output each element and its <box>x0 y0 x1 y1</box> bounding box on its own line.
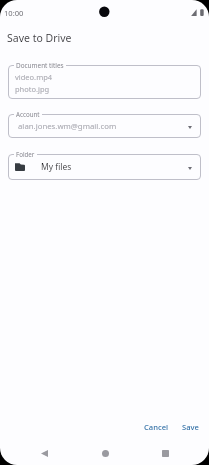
button[interactable]: video.mp4 <box>8 65 201 99</box>
staticText: Cancel <box>144 422 169 432</box>
button[interactable]: Save <box>178 419 203 435</box>
button[interactable]: My files <box>8 154 201 180</box>
button[interactable]: Back <box>32 441 56 465</box>
staticText: Save to Drive <box>7 31 72 45</box>
staticText: video.mp4 <box>15 72 53 82</box>
button[interactable]: Home <box>93 441 117 465</box>
button[interactable]: alan.jones.wm@gmail.com <box>8 114 201 138</box>
staticText: My files <box>41 161 72 173</box>
staticText: Save <box>182 422 199 432</box>
staticText: Account <box>16 110 40 118</box>
button[interactable]: Cancel <box>140 419 173 435</box>
staticText: 10:00 <box>4 8 24 18</box>
staticText: alan.jones.wm@gmail.com <box>18 121 117 132</box>
staticText: photo.jpg <box>15 84 50 94</box>
staticText: Folder <box>16 150 35 158</box>
button[interactable]: Recent apps <box>153 441 177 465</box>
staticText: Document titles <box>16 61 64 70</box>
